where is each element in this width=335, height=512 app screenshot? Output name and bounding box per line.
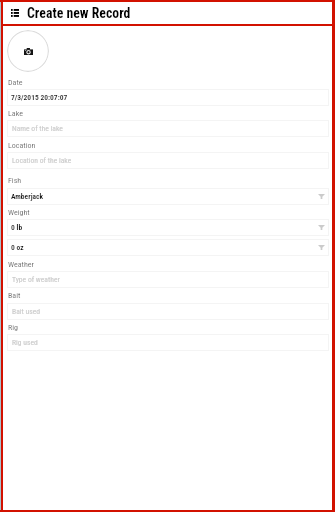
staticText: 7/3/2015 20:07:07: [11, 93, 68, 102]
staticText: 0 oz: [11, 243, 24, 252]
staticText: Weight: [8, 208, 30, 217]
button[interactable]: Bait used: [7, 303, 329, 320]
staticText: Amberjack: [11, 192, 44, 201]
button[interactable]: Location of the lake: [7, 152, 329, 169]
button[interactable]: Amberjack: [7, 188, 329, 205]
staticText: Location: [8, 141, 36, 150]
button[interactable]: Date: [7, 89, 329, 106]
button[interactable]: Name of the lake: [7, 120, 329, 137]
staticText: Type of weather: [12, 275, 60, 284]
button[interactable]: 0 oz: [7, 239, 329, 256]
staticText: Lake: [8, 109, 23, 118]
button[interactable]: Rig used: [7, 334, 329, 351]
staticText: Rig: [8, 323, 19, 332]
staticText: Create new Record: [27, 5, 131, 21]
staticText: Bait: [8, 291, 21, 300]
staticText: Rig used: [12, 338, 38, 347]
other: Menu: [11, 9, 19, 16]
button[interactable]: Add photo: [7, 30, 49, 72]
staticText: Weather: [8, 260, 34, 269]
button[interactable]: Type of weather: [7, 271, 329, 288]
staticText: Name of the lake: [12, 124, 63, 133]
staticText: Location of the lake: [12, 156, 72, 165]
staticText: Bait used: [12, 307, 40, 316]
staticText: Fish: [8, 176, 22, 185]
button[interactable]: Menu: [0, 0, 335, 26]
staticText: 0 lb: [11, 223, 23, 232]
button[interactable]: 0 lb: [7, 219, 329, 236]
staticText: Date: [8, 78, 23, 87]
